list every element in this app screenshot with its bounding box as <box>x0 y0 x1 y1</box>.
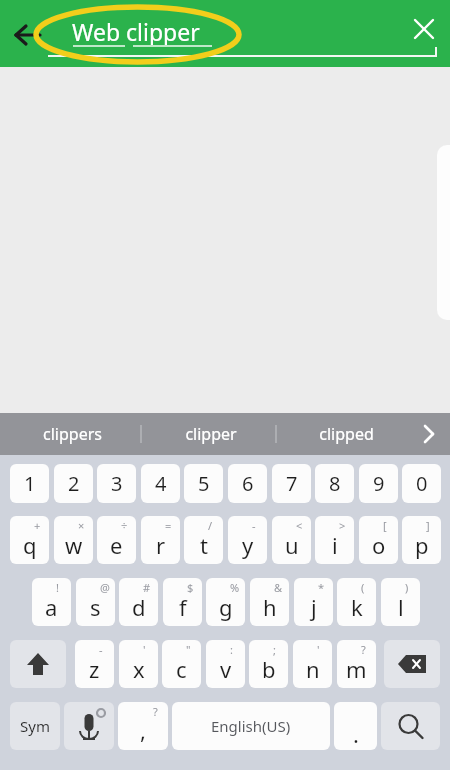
button[interactable]: Backspace <box>384 640 440 688</box>
staticText: v <box>220 654 232 684</box>
staticText: # <box>143 580 151 595</box>
button[interactable]: @ <box>76 578 115 626</box>
button[interactable]: Back <box>6 10 52 56</box>
button[interactable]: 5 <box>184 464 223 503</box>
button[interactable]: - <box>228 516 267 564</box>
button[interactable]: ] <box>402 516 441 564</box>
staticText: q <box>23 530 37 560</box>
staticText: ? <box>153 704 158 719</box>
button[interactable]: ' <box>119 640 158 688</box>
staticText: clipper <box>185 423 237 445</box>
staticText: : <box>230 642 233 657</box>
staticText: ( <box>361 580 365 595</box>
button[interactable]: 4 <box>141 464 180 503</box>
staticText: u <box>285 530 299 560</box>
button[interactable]: > <box>315 516 354 564</box>
staticText: , <box>140 715 146 745</box>
button[interactable]: ? <box>118 702 168 750</box>
button[interactable]: ? <box>337 640 376 688</box>
button[interactable]: ( <box>337 578 376 626</box>
button[interactable]: ' <box>293 640 332 688</box>
staticText: = <box>165 518 172 533</box>
staticText: clippers <box>43 423 102 445</box>
button[interactable]: Close <box>402 7 446 51</box>
button[interactable]: Voice input <box>64 702 114 750</box>
staticText: - <box>99 642 103 657</box>
staticText: 8 <box>329 470 341 497</box>
staticText: m <box>346 654 367 684</box>
button[interactable]: # <box>119 578 158 626</box>
staticText: o <box>372 530 386 560</box>
staticText: 6 <box>242 470 254 497</box>
staticText: d <box>132 592 146 622</box>
button[interactable]: Shift <box>10 640 66 688</box>
staticText: 5 <box>198 470 210 497</box>
button[interactable]: More suggestions <box>408 413 450 455</box>
button[interactable]: + <box>10 516 49 564</box>
button[interactable]: Sym <box>10 702 60 750</box>
button[interactable]: & <box>250 578 289 626</box>
button[interactable]: / <box>184 516 223 564</box>
staticText: & <box>274 580 283 595</box>
button[interactable]: . <box>334 702 377 750</box>
staticText: . <box>353 719 359 749</box>
staticText: x <box>133 654 145 684</box>
staticText: 7 <box>286 470 298 497</box>
staticText: > <box>339 518 346 533</box>
button[interactable]: % <box>206 578 245 626</box>
staticText: Web clipper <box>72 16 200 47</box>
button[interactable]: 8 <box>315 464 354 503</box>
staticText: a <box>45 592 58 622</box>
button[interactable]: ; <box>249 640 288 688</box>
staticText: j <box>311 592 317 622</box>
button[interactable]: clipped <box>284 413 409 455</box>
staticText: z <box>89 654 100 684</box>
staticText: ] <box>426 518 430 533</box>
staticText: @ <box>100 580 110 595</box>
button[interactable]: 0 <box>402 464 441 503</box>
staticText: × <box>78 518 85 533</box>
button[interactable]: English(US) <box>172 702 330 750</box>
staticText: Sym <box>20 716 50 736</box>
button[interactable]: - <box>75 640 114 688</box>
staticText: r <box>156 530 166 560</box>
staticText: + <box>34 518 41 533</box>
button[interactable]: : <box>206 640 245 688</box>
staticText: k <box>351 592 363 622</box>
staticText: n <box>306 654 320 684</box>
staticText: l <box>398 592 404 622</box>
button[interactable]: < <box>272 516 311 564</box>
staticText: g <box>219 592 233 622</box>
button[interactable]: × <box>54 516 93 564</box>
staticText: / <box>208 518 213 533</box>
staticText: 0 <box>416 470 428 497</box>
button[interactable]: clippers <box>10 413 135 455</box>
button[interactable]: ! <box>32 578 71 626</box>
staticText: e <box>110 530 123 560</box>
staticText: English(US) <box>211 716 291 736</box>
button[interactable]: * <box>294 578 333 626</box>
button[interactable]: 9 <box>359 464 398 503</box>
button[interactable]: 7 <box>272 464 311 503</box>
staticText: 9 <box>373 470 385 497</box>
button[interactable]: 2 <box>54 464 93 503</box>
button[interactable]: 6 <box>228 464 267 503</box>
button[interactable]: [ <box>359 516 398 564</box>
button[interactable]: clipper <box>148 413 273 455</box>
button[interactable]: 1 <box>10 464 49 503</box>
staticText: ' <box>143 642 146 657</box>
staticText: - <box>252 518 256 533</box>
button[interactable]: Web clipper <box>50 12 438 56</box>
button[interactable]: " <box>162 640 201 688</box>
button[interactable]: Search <box>381 702 440 750</box>
button[interactable]: 3 <box>97 464 136 503</box>
staticText: 4 <box>155 470 167 497</box>
button[interactable]: ÷ <box>97 516 136 564</box>
button[interactable]: $ <box>163 578 202 626</box>
staticText: * <box>318 580 325 595</box>
staticText: t <box>200 530 208 560</box>
staticText: w <box>65 530 83 560</box>
button[interactable]: = <box>141 516 180 564</box>
button[interactable]: ) <box>381 578 420 626</box>
staticText: % <box>230 580 240 595</box>
